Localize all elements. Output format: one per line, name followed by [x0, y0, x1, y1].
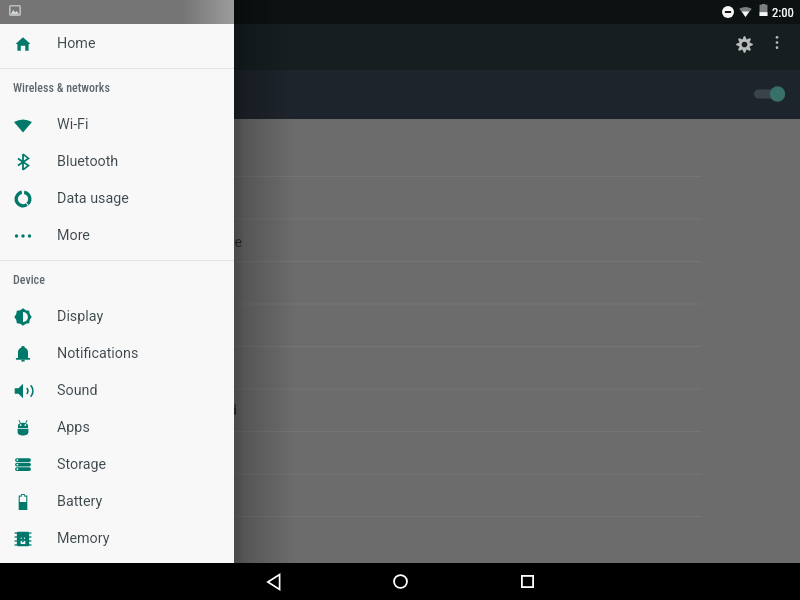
staticText: Display [57, 308, 104, 325]
button[interactable]: Settings [722, 22, 766, 66]
staticText: Sound [57, 382, 98, 399]
button[interactable]: Data usage [0, 180, 234, 217]
button[interactable]: Battery [0, 483, 234, 520]
button[interactable]: Display [0, 298, 234, 335]
staticText: Memory [57, 530, 110, 547]
staticText: Build [205, 402, 237, 419]
button[interactable]: Toggle setting [748, 72, 794, 116]
button[interactable]: Storage [0, 446, 234, 483]
button[interactable]: Home [372, 563, 428, 600]
button[interactable]: Notifications [0, 335, 234, 372]
button[interactable]: Sound [0, 372, 234, 409]
button[interactable]: Wi-Fi [0, 106, 234, 143]
staticText: 2:00 [772, 5, 794, 20]
staticText: Device [13, 273, 45, 287]
button[interactable]: Bluetooth [0, 143, 234, 180]
staticText: Data usage [57, 190, 129, 207]
staticText: Wireless & networks [13, 81, 110, 95]
staticText: Wi-Fi [57, 116, 89, 133]
button[interactable]: Home [0, 24, 234, 63]
button[interactable]: Apps [0, 409, 234, 446]
staticText: Battery [57, 493, 103, 510]
staticText: Storage [57, 456, 107, 473]
button[interactable]: Back [246, 563, 302, 600]
staticText: Notifications [57, 345, 139, 362]
button[interactable]: More options [756, 22, 797, 63]
staticText: Apps [57, 419, 90, 436]
staticText: Bluetooth [57, 153, 119, 170]
button[interactable]: Recent apps [499, 563, 555, 600]
staticText: Storage [193, 234, 243, 251]
button[interactable]: Memory [0, 520, 234, 557]
staticText: More [57, 227, 90, 244]
staticText: Home [57, 35, 96, 52]
button[interactable]: More [0, 217, 234, 254]
